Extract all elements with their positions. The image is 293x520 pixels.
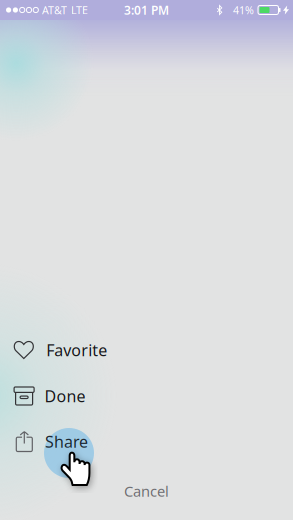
staticText: 3:01 PM [124,2,169,18]
staticText: 41% [233,3,254,17]
staticText: Share [45,431,88,452]
staticText: Done [45,385,86,407]
staticText: Cancel [124,481,169,501]
button[interactable]: Favorite [0,327,293,373]
staticText: Favorite [46,339,107,361]
staticText: AT&T [42,3,67,17]
button[interactable]: Done [0,373,293,419]
button[interactable]: Share [0,418,293,464]
staticText: LTE [71,3,88,17]
button[interactable]: Cancel [0,474,293,508]
